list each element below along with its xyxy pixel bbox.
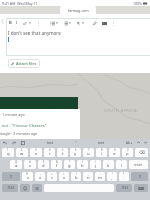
button[interactable]: Ⓐ	[32, 184, 42, 192]
staticText: r	[49, 151, 51, 157]
button[interactable]: e	[30, 148, 42, 157]
button[interactable]: h	[77, 160, 88, 169]
button[interactable]: q	[2, 148, 14, 157]
staticText: n	[87, 175, 90, 181]
button[interactable]: ,	[107, 172, 117, 181]
staticText: %	[26, 172, 29, 176]
button[interactable]: ⌫	[135, 148, 148, 157]
staticText: t	[62, 151, 64, 157]
staticText: b	[75, 175, 78, 181]
staticText: 9:41 AM Wed May 11	[2, 1, 38, 6]
button[interactable]: farmag.com	[60, 6, 96, 14]
button[interactable]: n	[83, 172, 93, 181]
button[interactable]: c	[47, 172, 57, 181]
button[interactable]: v	[59, 172, 69, 181]
button[interactable]: Collapse	[136, 140, 141, 145]
button[interactable]: x	[35, 172, 45, 181]
staticText: "	[75, 140, 77, 145]
button[interactable]: t	[57, 148, 68, 157]
button[interactable]: o	[109, 148, 120, 157]
button[interactable]: Paste	[20, 140, 25, 145]
button[interactable]: Undo	[2, 140, 7, 145]
button[interactable]: Format	[62, 20, 68, 26]
button[interactable]: r	[44, 148, 55, 157]
button[interactable]: ⌨	[134, 184, 148, 192]
staticText: l	[121, 163, 123, 169]
staticText: .?123	[121, 186, 128, 190]
button[interactable]: ⇧	[2, 172, 20, 181]
staticText: ,	[111, 175, 113, 181]
button[interactable]: k	[103, 160, 114, 169]
button[interactable]: .	[119, 172, 129, 181]
staticText: +	[51, 172, 53, 176]
button[interactable]: Format	[92, 20, 98, 26]
staticText: I don't see that anymore	[8, 30, 61, 36]
button[interactable]: z	[22, 172, 33, 181]
button[interactable]: Format	[110, 20, 116, 26]
staticText: *	[69, 160, 71, 164]
button[interactable]: Format	[22, 20, 28, 26]
button[interactable]: Format	[14, 20, 20, 26]
staticText: I	[16, 20, 18, 26]
button[interactable]: Format	[101, 20, 107, 26]
button[interactable]: m	[95, 172, 105, 181]
staticText: Ⓐ	[35, 186, 40, 191]
button[interactable]: p	[122, 148, 133, 157]
staticText: .	[123, 175, 125, 181]
button[interactable]: l	[116, 160, 127, 169]
staticText: o	[113, 151, 116, 157]
staticText: '	[108, 160, 109, 164]
staticText: 2	[21, 148, 23, 152]
button[interactable]: b	[71, 172, 81, 181]
staticText: ⋮	[111, 21, 115, 26]
button[interactable]: Format	[49, 20, 55, 26]
staticText: ¶	[77, 21, 80, 26]
button[interactable]: Format	[35, 20, 41, 26]
button[interactable]: w	[16, 148, 28, 157]
button[interactable]: d	[38, 160, 49, 169]
button[interactable]: Attach files	[8, 59, 40, 68]
button[interactable]: a	[10, 160, 22, 169]
button[interactable]: u	[83, 148, 94, 157]
staticText: (	[82, 160, 83, 164]
staticText: text	[47, 140, 54, 145]
staticText: 1	[7, 148, 9, 152]
button[interactable]: ⇧	[131, 172, 148, 181]
button[interactable]: Format	[6, 18, 150, 56]
button[interactable]: g	[64, 160, 75, 169]
button[interactable]: Expand	[143, 140, 148, 145]
button[interactable]: Format	[75, 20, 81, 26]
staticText: ?	[123, 172, 125, 176]
staticText: d	[42, 163, 45, 169]
button[interactable]: i	[96, 148, 107, 157]
button[interactable]: return	[129, 160, 148, 169]
other: Back	[1, 19, 4, 24]
staticText: Attach files	[16, 61, 37, 66]
staticText: w	[20, 151, 24, 157]
button[interactable]: Redo	[11, 140, 16, 145]
staticText: 8	[101, 148, 103, 152]
button[interactable]: .?123	[116, 184, 132, 192]
staticText: :	[100, 172, 101, 176]
button[interactable]: Format	[7, 20, 13, 26]
button[interactable]: .?123	[2, 184, 18, 192]
staticText: )	[95, 160, 96, 164]
staticText: &	[56, 160, 58, 164]
staticText: e	[35, 151, 38, 157]
button[interactable]: f	[51, 160, 62, 169]
button[interactable]: ☺	[20, 184, 30, 192]
button[interactable]: s	[24, 160, 36, 169]
staticText: u	[87, 151, 90, 157]
staticText: B	[9, 20, 12, 26]
button[interactable]: j	[90, 160, 101, 169]
staticText: @	[15, 160, 18, 164]
staticText: 100%	[133, 1, 142, 6]
staticText: $	[43, 160, 45, 164]
staticText: text	[98, 140, 105, 145]
button[interactable]: y	[70, 148, 81, 157]
staticText: "	[121, 160, 123, 164]
staticText: q	[7, 151, 10, 157]
staticText: -	[40, 172, 41, 176]
